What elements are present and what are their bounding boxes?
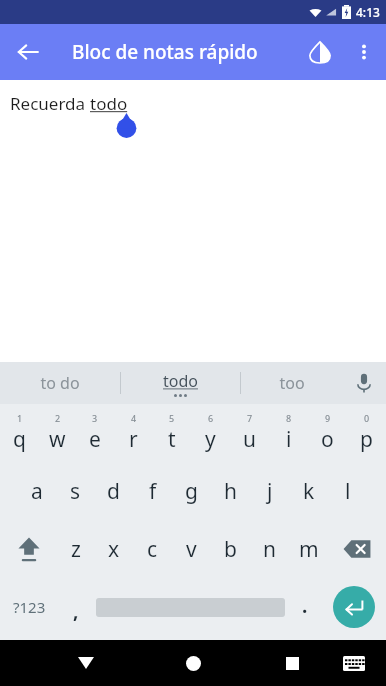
staticText: p [360,425,373,454]
button[interactable]: x [95,520,133,578]
staticText: b [224,535,237,564]
staticText: q [13,425,26,454]
staticText: , [73,598,79,624]
staticText: 0 [364,412,370,424]
staticText: 5 [169,412,175,424]
button[interactable]: Shift [0,520,57,578]
button[interactable]: Space [93,578,288,636]
staticText: l [345,477,351,506]
button[interactable]: to do [0,362,120,404]
button[interactable]: 2 [38,404,76,462]
button[interactable]: v [172,520,211,578]
staticText: i [286,425,292,454]
staticText: 2 [55,412,61,424]
button[interactable]: l [328,462,367,520]
button[interactable]: 5 [152,404,191,462]
button[interactable]: More options [342,30,386,74]
staticText: y [205,425,216,454]
button[interactable]: . [288,578,322,636]
button[interactable]: g [172,462,211,520]
button[interactable]: c [133,520,172,578]
button[interactable]: 3 [76,404,114,462]
button[interactable]: 4 [114,404,152,462]
staticText: x [108,535,120,564]
button[interactable]: 6 [191,404,230,462]
staticText: to do [40,372,80,394]
staticText: f [149,477,157,506]
button[interactable]: m [289,520,328,578]
staticText: 8 [286,412,292,424]
button[interactable]: Switch keyboard [334,643,374,683]
button[interactable]: ?123 [0,578,59,636]
button[interactable]: Home [171,641,215,685]
button[interactable]: todo [121,362,240,404]
staticText: k [303,477,315,506]
button[interactable]: Backspace [328,520,386,578]
button[interactable]: 9 [308,404,347,462]
button[interactable]: f [133,462,172,520]
button[interactable]: a [18,462,56,520]
button[interactable]: , [59,578,93,636]
staticText: j [267,477,273,506]
button[interactable]: Back [64,641,108,685]
staticText: todo [163,370,198,392]
staticText: n [263,535,276,564]
button[interactable]: d [94,462,133,520]
staticText: todo [90,92,128,115]
button[interactable]: h [211,462,250,520]
staticText: Bloc de notas rápido [72,39,258,65]
staticText: h [224,477,237,506]
button[interactable]: 0 [347,404,386,462]
staticText: d [107,477,120,506]
staticText: 4 [131,412,137,424]
staticText: m [299,535,319,564]
staticText: a [31,477,43,506]
button[interactable]: 1 [0,404,38,462]
staticText: t [168,425,176,454]
button[interactable]: too [241,362,342,404]
staticText: 4:13 [356,4,380,20]
button[interactable]: Enter [322,578,386,636]
button[interactable]: Recent apps [270,641,314,685]
button[interactable]: 8 [269,404,308,462]
staticText: ?123 [13,597,46,617]
button[interactable]: Toggle theme [298,30,342,74]
button[interactable]: Back [8,32,48,72]
staticText: Recuerda [10,92,90,115]
staticText: 7 [247,412,253,424]
staticText: v [186,535,197,564]
staticText: 1 [17,412,23,424]
staticText: too [279,372,305,394]
staticText: z [71,535,81,564]
button[interactable]: Voice input [342,362,386,404]
staticText: 3 [92,412,98,424]
button[interactable]: b [211,520,250,578]
staticText: 9 [325,412,331,424]
staticText: s [70,477,81,506]
button[interactable]: n [250,520,289,578]
button[interactable]: k [289,462,328,520]
staticText: w [49,425,66,454]
button[interactable]: z [57,520,95,578]
staticText: u [243,425,256,454]
staticText: o [321,425,334,454]
staticText: r [129,425,138,454]
staticText: g [185,477,198,506]
button[interactable]: 7 [230,404,269,462]
button[interactable]: s [56,462,94,520]
staticText: e [89,425,101,454]
staticText: c [147,535,158,564]
staticText: 6 [208,412,214,424]
button[interactable]: j [250,462,289,520]
staticText: . [302,593,308,619]
